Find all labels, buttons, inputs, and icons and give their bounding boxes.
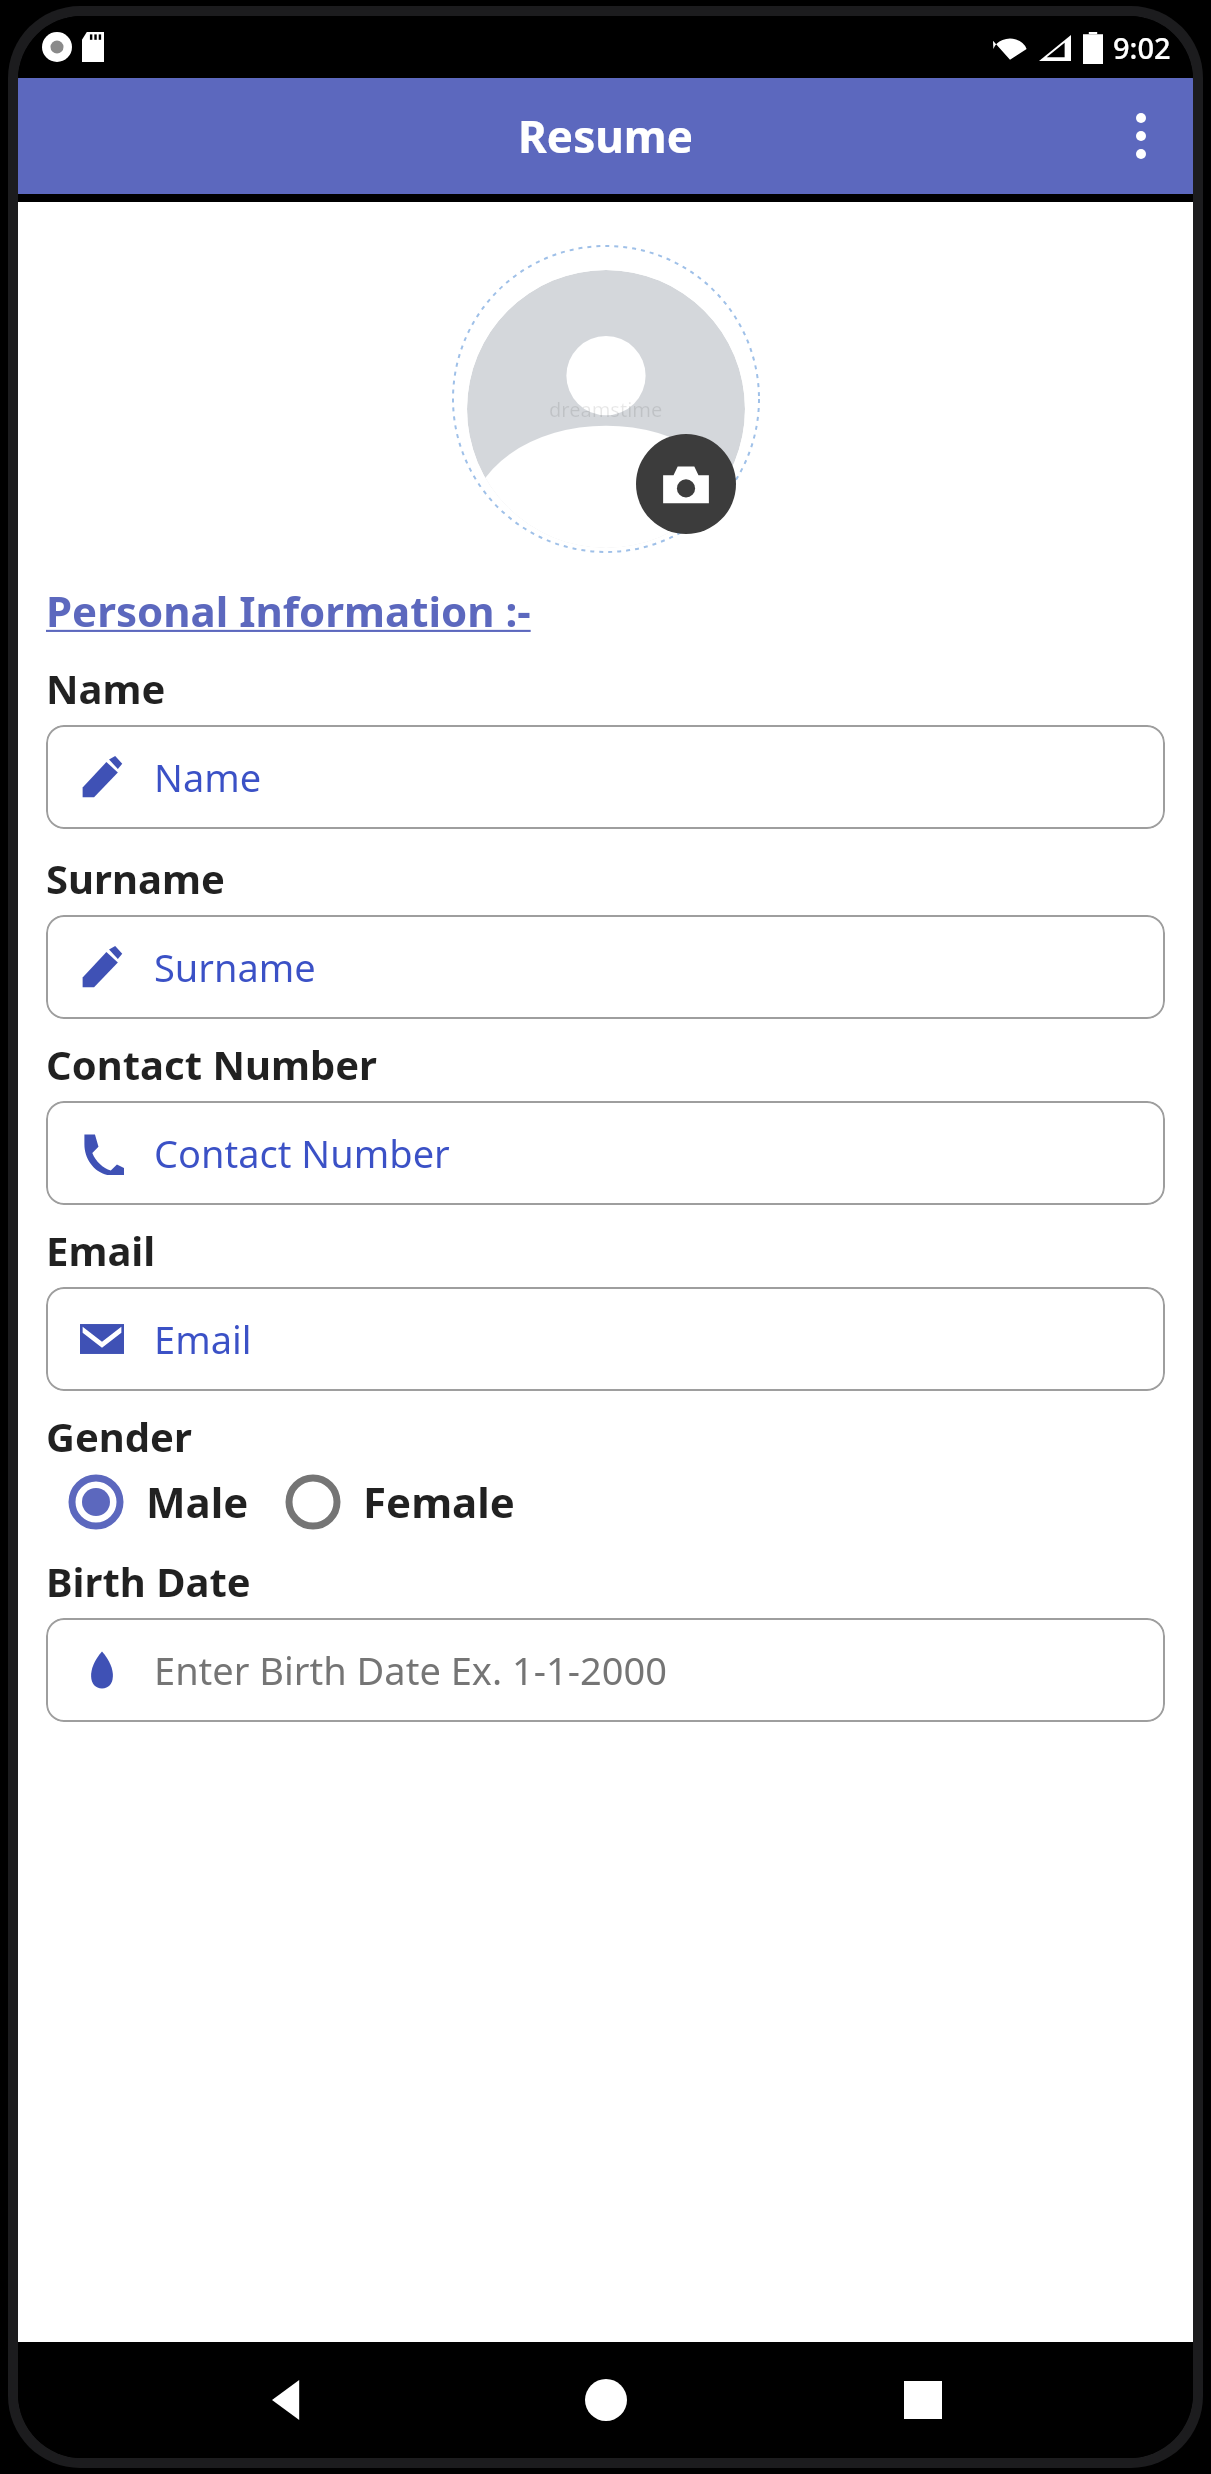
button[interactable]: Back (240, 2352, 336, 2448)
staticText: dreamstime (549, 396, 663, 423)
button[interactable]: Name (46, 725, 1165, 829)
button[interactable]: More options (1103, 98, 1179, 174)
button[interactable]: Change photo (636, 434, 736, 534)
staticText: Name (154, 751, 262, 803)
button[interactable]: Surname (46, 915, 1165, 1019)
staticText: Gender (46, 1409, 192, 1463)
button[interactable]: Enter Birth Date Ex. 1-1-2000 (46, 1618, 1165, 1722)
staticText: Contact Number (154, 1127, 450, 1179)
button[interactable]: Personal Information :- (46, 582, 531, 639)
button[interactable]: Recent apps (875, 2352, 971, 2448)
staticText: 9:02 (1113, 28, 1171, 67)
staticText: Female (363, 1473, 515, 1530)
button[interactable]: Home (558, 2352, 654, 2448)
staticText: Surname (154, 941, 316, 993)
staticText: Male (146, 1473, 249, 1530)
staticText: Resume (518, 106, 693, 166)
staticText: Surname (46, 851, 225, 905)
button[interactable]: Email (46, 1287, 1165, 1391)
button[interactable]: Female (285, 1473, 515, 1530)
staticText: Email (154, 1313, 252, 1365)
staticText: Name (46, 661, 166, 715)
staticText: Enter Birth Date Ex. 1-1-2000 (154, 1644, 667, 1696)
button[interactable]: Male (68, 1473, 249, 1530)
staticText: Birth Date (46, 1554, 251, 1608)
staticText: Contact Number (46, 1037, 377, 1091)
staticText: Email (46, 1223, 156, 1277)
button[interactable]: Profile photo (467, 270, 745, 548)
button[interactable]: Contact Number (46, 1101, 1165, 1205)
